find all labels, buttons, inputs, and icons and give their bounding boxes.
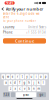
staticText: o (40, 75, 42, 78)
staticText: +1 555 0134 (26, 31, 46, 34)
staticText: x (15, 87, 16, 90)
staticText: 9:41 (6, 0, 13, 6)
staticText: go (39, 93, 43, 96)
staticText: w (7, 75, 9, 78)
staticText: c (19, 87, 20, 90)
staticText: f (19, 81, 20, 84)
staticText: q (2, 75, 4, 78)
staticText: Verify your number (5, 6, 43, 12)
staticText: space (22, 93, 29, 96)
staticText: b (28, 87, 30, 90)
staticText: Enter the 6-digit code we sent (3, 12, 40, 19)
staticText: to your phone number (3, 19, 36, 23)
staticText: g (23, 81, 25, 84)
button[interactable]: Back (0, 6, 6, 12)
staticText: 123 (3, 93, 9, 96)
staticText: l (43, 81, 44, 84)
staticText: y (26, 75, 27, 78)
button[interactable]: Continue (3, 38, 46, 44)
staticText: k (38, 81, 39, 84)
staticText: d (14, 81, 16, 84)
staticText: e (12, 75, 14, 78)
staticText: Phone (3, 31, 13, 34)
staticText: United States (28, 25, 46, 29)
staticText: a (5, 81, 6, 84)
staticText: u (31, 75, 33, 78)
staticText: Country (3, 25, 14, 29)
staticText: v (24, 87, 25, 90)
staticText: t (22, 75, 23, 78)
staticText: z (10, 87, 11, 90)
staticText: Continue (15, 38, 34, 44)
staticText: m (38, 87, 40, 90)
staticText: p (45, 75, 47, 78)
staticText: h (28, 81, 30, 84)
staticText: i (36, 75, 37, 78)
staticText: j (33, 81, 34, 84)
staticText: s (10, 81, 11, 84)
staticText: n (33, 87, 35, 90)
staticText: r (17, 75, 18, 78)
